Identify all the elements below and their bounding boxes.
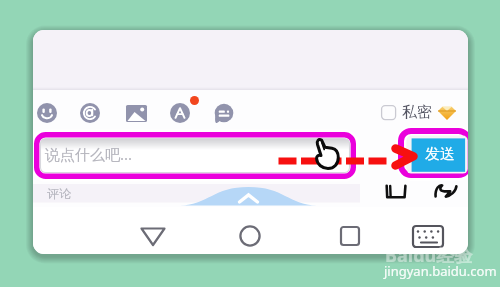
button[interactable]: Home	[226, 213, 274, 254]
button[interactable]: Mention	[76, 99, 104, 127]
button[interactable]: 说点什么吧...	[34, 132, 356, 179]
button[interactable]: Emoji	[33, 99, 61, 127]
staticText: 评论	[47, 186, 71, 201]
staticText: Baidu经验	[385, 243, 473, 268]
button[interactable]: Recents	[326, 213, 374, 254]
button[interactable]: 发送	[398, 128, 468, 179]
staticText: jingyan.baidu.com	[384, 262, 497, 280]
button[interactable]: 私密	[378, 102, 436, 123]
staticText: 说点什么吧...	[45, 144, 133, 164]
button[interactable]: Back	[129, 213, 177, 254]
button[interactable]: Picture	[122, 99, 150, 127]
button[interactable]: Keyboard	[404, 213, 452, 254]
staticText: 发送	[425, 145, 455, 164]
staticText: 私密	[402, 103, 432, 122]
button[interactable]: Topic	[210, 99, 238, 127]
button[interactable]: Text style	[166, 99, 194, 127]
